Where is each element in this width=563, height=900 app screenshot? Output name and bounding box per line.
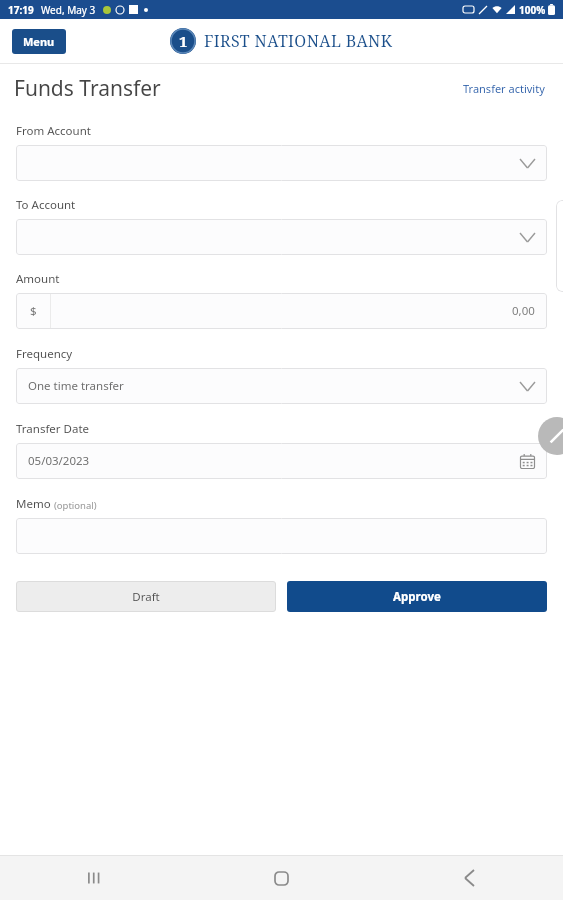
button[interactable]: Recent apps bbox=[0, 856, 187, 900]
button[interactable]: Approve bbox=[287, 581, 547, 612]
staticText: One time transfer bbox=[28, 378, 124, 394]
staticText: Menu bbox=[23, 34, 55, 49]
staticText: Amount bbox=[16, 271, 60, 287]
button[interactable] bbox=[16, 518, 547, 554]
staticText: Frequency bbox=[16, 346, 73, 362]
button[interactable]: One time transfer bbox=[16, 368, 547, 404]
staticText: Funds Transfer bbox=[14, 74, 161, 103]
button[interactable] bbox=[16, 219, 547, 255]
button[interactable]: $ bbox=[16, 293, 547, 329]
button[interactable]: Home bbox=[187, 856, 375, 900]
staticText: 100% bbox=[519, 3, 546, 17]
button[interactable]: Draft bbox=[16, 581, 276, 612]
button[interactable]: 05/03/2023 bbox=[16, 443, 547, 479]
staticText: From Account bbox=[16, 123, 91, 139]
staticText: 1 bbox=[179, 31, 188, 51]
button[interactable]: Back bbox=[375, 856, 563, 900]
staticText: 05/03/2023 bbox=[28, 453, 90, 469]
staticText: Draft bbox=[132, 589, 160, 605]
staticText: Transfer Date bbox=[16, 421, 90, 437]
staticText: Approve bbox=[393, 589, 441, 605]
staticText: To Account bbox=[16, 197, 76, 213]
button[interactable]: Transfer activity bbox=[459, 77, 549, 100]
staticText: $ bbox=[30, 303, 37, 319]
staticText: Transfer activity bbox=[463, 81, 545, 96]
button[interactable]: Menu bbox=[12, 29, 66, 54]
other: Pick date bbox=[520, 454, 535, 469]
staticText: (optional) bbox=[54, 499, 97, 512]
staticText: Memo bbox=[16, 496, 51, 512]
staticText: Wed, May 3 bbox=[41, 3, 96, 17]
button[interactable] bbox=[16, 145, 547, 181]
staticText: FIRST NATIONAL BANK bbox=[204, 30, 393, 52]
staticText: 0,00 bbox=[512, 303, 535, 319]
staticText: 17:19 bbox=[8, 3, 34, 17]
button[interactable]: Edit bbox=[538, 417, 563, 455]
